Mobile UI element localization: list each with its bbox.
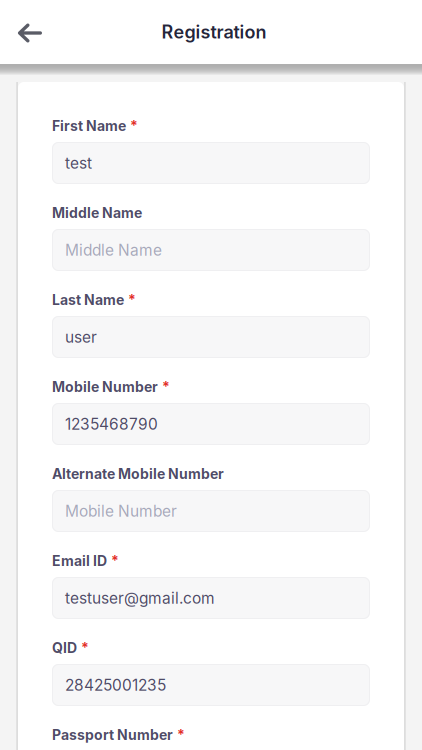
staticText: * (162, 378, 170, 395)
staticText: Middle Name (65, 241, 162, 259)
staticText: * (130, 117, 138, 134)
staticText: * (111, 552, 119, 569)
staticText: Mobile Number (52, 378, 158, 395)
staticText: * (177, 726, 185, 743)
staticText: First Name (52, 117, 126, 134)
staticText: testuser@gmail.com (65, 589, 215, 607)
staticText: * (128, 291, 136, 308)
staticText: 28425001235 (65, 676, 166, 694)
button[interactable]: Email ID (52, 577, 370, 619)
button[interactable]: First Name (52, 142, 370, 184)
button[interactable]: Middle Name (52, 229, 370, 271)
staticText: Middle Name (52, 204, 142, 221)
button[interactable]: Mobile Number (52, 403, 370, 445)
staticText: * (81, 639, 89, 656)
button[interactable]: QID (52, 664, 370, 706)
staticText: QID (52, 639, 77, 656)
staticText: test (65, 154, 92, 172)
staticText: user (65, 328, 97, 346)
staticText: Email ID (52, 552, 107, 569)
staticText: Registration (161, 21, 266, 43)
staticText: Passport Number (52, 726, 173, 743)
button[interactable]: Alternate Mobile Number (52, 490, 370, 532)
button[interactable]: Back (0, 0, 90, 64)
staticText: Mobile Number (65, 502, 177, 520)
button[interactable]: Last Name (52, 316, 370, 358)
staticText: Last Name (52, 291, 124, 308)
staticText: 1235468790 (65, 415, 158, 433)
staticText: Alternate Mobile Number (52, 465, 224, 482)
